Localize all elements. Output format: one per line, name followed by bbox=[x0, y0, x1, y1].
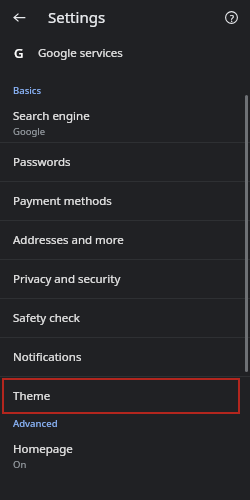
staticText: Settings bbox=[48, 7, 106, 27]
button[interactable]: Theme bbox=[2, 378, 240, 414]
staticText: Basics bbox=[13, 84, 42, 97]
staticText: Homepage bbox=[13, 441, 73, 457]
staticText: Theme bbox=[13, 388, 51, 404]
button[interactable]: Payment methods bbox=[0, 182, 250, 220]
staticText: Search engine bbox=[13, 108, 90, 124]
staticText: Privacy and security bbox=[13, 271, 121, 287]
staticText: Advanced bbox=[13, 417, 58, 430]
staticText: ? bbox=[230, 12, 234, 24]
button[interactable]: Back bbox=[8, 6, 30, 28]
button[interactable]: Notifications bbox=[0, 338, 250, 376]
button[interactable]: Privacy and security bbox=[0, 260, 250, 298]
button[interactable]: Passwords bbox=[0, 143, 250, 181]
button[interactable]: Safety check bbox=[0, 299, 250, 337]
staticText: Payment methods bbox=[13, 193, 112, 209]
staticText: On bbox=[13, 458, 27, 471]
staticText: Addresses and more bbox=[13, 232, 124, 248]
button[interactable]: G bbox=[0, 34, 250, 72]
staticText: Safety check bbox=[13, 310, 80, 326]
button[interactable]: Search engine bbox=[0, 104, 250, 142]
button[interactable]: Help bbox=[220, 6, 242, 28]
staticText: Google services bbox=[38, 45, 123, 61]
button[interactable]: Addresses and more bbox=[0, 221, 250, 259]
staticText: G bbox=[14, 44, 24, 62]
staticText: Passwords bbox=[13, 154, 71, 170]
staticText: Google bbox=[13, 125, 46, 138]
staticText: Notifications bbox=[13, 349, 82, 365]
button[interactable]: Homepage bbox=[0, 437, 250, 475]
